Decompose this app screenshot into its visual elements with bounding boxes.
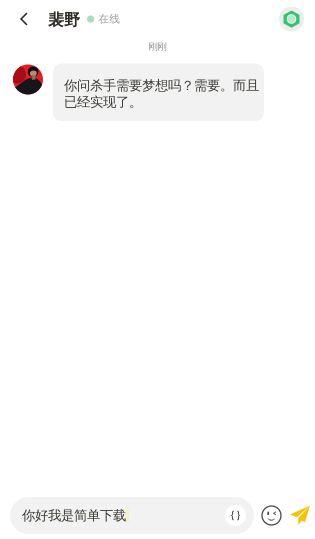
button[interactable]: Send — [290, 505, 310, 525]
staticText: 你好我是简单下载 — [22, 507, 126, 524]
staticText: 裴野 — [48, 10, 80, 30]
staticText: 在线 — [98, 12, 120, 25]
button[interactable]: Back — [11, 3, 37, 35]
button[interactable]: Status — [279, 6, 304, 31]
button[interactable]: Emoji — [262, 506, 281, 525]
button[interactable]: Insert code — [225, 505, 246, 526]
staticText: 你问杀手需要梦想吗？需要。而且 已经实现了。 — [64, 77, 259, 110]
staticText: 刚刚 — [148, 41, 166, 52]
